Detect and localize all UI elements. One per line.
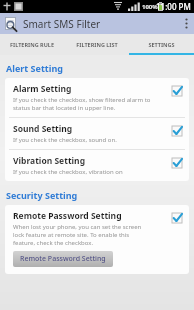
staticText: Sound Setting xyxy=(13,123,73,135)
button[interactable]: FILTERING LIST xyxy=(64,34,129,55)
button[interactable]: Vibration Setting xyxy=(5,150,189,181)
button[interactable]: Remote Password Setting xyxy=(13,251,113,267)
staticText: If you check the checkbox, sound on. xyxy=(13,136,117,144)
button[interactable]: More options xyxy=(178,13,194,34)
button[interactable]: Remote Password Setting xyxy=(5,205,189,274)
button[interactable]: Vibration Setting checkbox xyxy=(170,156,183,169)
staticText: Remote Password Setting xyxy=(20,254,106,264)
staticText: SETTINGS xyxy=(148,41,175,48)
staticText: 100% xyxy=(142,3,158,11)
staticText: Smart SMS Filter xyxy=(23,17,101,31)
staticText: feature, check the checkbox. xyxy=(13,239,94,247)
staticText: lock feature at remote site. To enable t… xyxy=(13,231,130,239)
button[interactable]: Alarm Setting xyxy=(5,78,189,117)
staticText: FILTERING LIST xyxy=(76,41,118,48)
staticText: status bar that located in upper line. xyxy=(13,104,116,112)
staticText: FILTERING RULE xyxy=(10,41,54,48)
button[interactable]: SETTINGS xyxy=(129,34,194,55)
staticText: Security Setting xyxy=(6,189,78,201)
staticText: Alert Setting xyxy=(6,62,63,74)
staticText: When lost your phone, you can set the sc… xyxy=(13,223,142,231)
staticText: If you check the checkbox, show filtered… xyxy=(13,96,151,104)
staticText: 11:00 PM xyxy=(156,1,191,12)
staticText: Remote Password Setting xyxy=(13,210,122,222)
button[interactable]: FILTERING RULE xyxy=(0,34,64,55)
button[interactable]: Remote Password Setting checkbox xyxy=(170,211,183,224)
button[interactable]: Sound Setting xyxy=(5,118,189,149)
button[interactable]: Alarm Setting checkbox xyxy=(170,84,183,97)
staticText: Vibration Setting xyxy=(13,155,86,167)
staticText: If you check the checkbox, vibration on xyxy=(13,168,123,176)
button[interactable]: Sound Setting checkbox xyxy=(170,124,183,137)
staticText: Alarm Setting xyxy=(13,83,72,95)
